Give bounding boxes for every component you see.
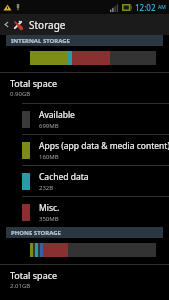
- button[interactable]: Total space: [0, 265, 169, 295]
- staticText: AM: [158, 4, 166, 11]
- staticText: Misc.: [39, 202, 60, 214]
- staticText: 232B: [39, 184, 54, 192]
- staticText: 699MB: [39, 122, 59, 130]
- other: Back: [3, 21, 10, 28]
- staticText: Available: [39, 109, 75, 121]
- staticText: PHONE STORAGE: [11, 229, 61, 237]
- staticText: 12:02: [135, 2, 156, 13]
- staticText: Storage: [29, 18, 66, 32]
- staticText: 160MB: [39, 153, 59, 161]
- staticText: Total space: [10, 77, 58, 89]
- staticText: Cached data: [39, 171, 89, 183]
- button[interactable]: Back: [0, 14, 70, 35]
- staticText: 350MB: [39, 215, 59, 223]
- staticText: INTERNAL STORAGE: [11, 37, 70, 45]
- staticText: 2.01GB: [10, 282, 31, 290]
- button[interactable]: Apps (app data & media content): [0, 135, 169, 165]
- button[interactable]: Misc.: [0, 197, 169, 227]
- button[interactable]: Total space: [0, 73, 169, 103]
- staticText: Total space: [10, 269, 58, 281]
- button[interactable]: Available: [0, 104, 169, 134]
- button[interactable]: Cached data: [0, 166, 169, 196]
- staticText: Apps (app data & media content): [39, 140, 169, 152]
- staticText: 0.90GB: [10, 90, 31, 98]
